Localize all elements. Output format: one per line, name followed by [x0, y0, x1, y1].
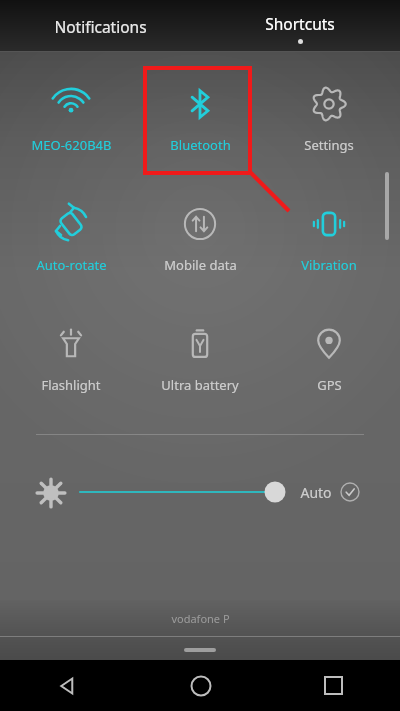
staticText: Shortcuts — [265, 13, 335, 34]
button[interactable]: Home — [134, 660, 267, 711]
button[interactable]: MEO-620B4B — [12, 68, 130, 173]
staticText: Vibration — [301, 256, 357, 274]
staticText: Mobile data — [164, 256, 237, 274]
staticText: GPS — [317, 376, 342, 394]
button[interactable]: Collapse panel — [184, 648, 216, 652]
button[interactable]: GPS — [270, 308, 388, 413]
button[interactable]: Vibration — [270, 188, 388, 293]
other: Brightness — [36, 478, 66, 508]
button[interactable]: Bluetooth — [141, 68, 259, 173]
button[interactable]: Settings — [270, 68, 388, 173]
staticText: MEO-620B4B — [31, 136, 112, 154]
staticText: Flashlight — [41, 376, 101, 394]
button[interactable]: Notifications — [0, 0, 200, 52]
button[interactable]: Ultra battery — [141, 308, 259, 413]
staticText: Bluetooth — [170, 136, 231, 154]
button[interactable]: Brightness slider — [78, 470, 293, 514]
button[interactable]: Auto — [300, 470, 380, 514]
staticText: Ultra battery — [161, 376, 239, 394]
button[interactable]: Auto-rotate — [12, 188, 130, 293]
staticText: vodafone P — [171, 611, 230, 626]
button[interactable]: Recent apps — [267, 660, 400, 711]
button[interactable]: Mobile data — [141, 188, 259, 293]
staticText: Notifications — [54, 16, 147, 37]
button[interactable]: Shortcuts — [200, 0, 400, 52]
button[interactable]: Back — [0, 660, 134, 711]
button[interactable]: Flashlight — [12, 308, 130, 413]
staticText: Settings — [304, 136, 354, 154]
staticText: Auto-rotate — [36, 256, 107, 274]
staticText: Auto — [300, 483, 332, 502]
